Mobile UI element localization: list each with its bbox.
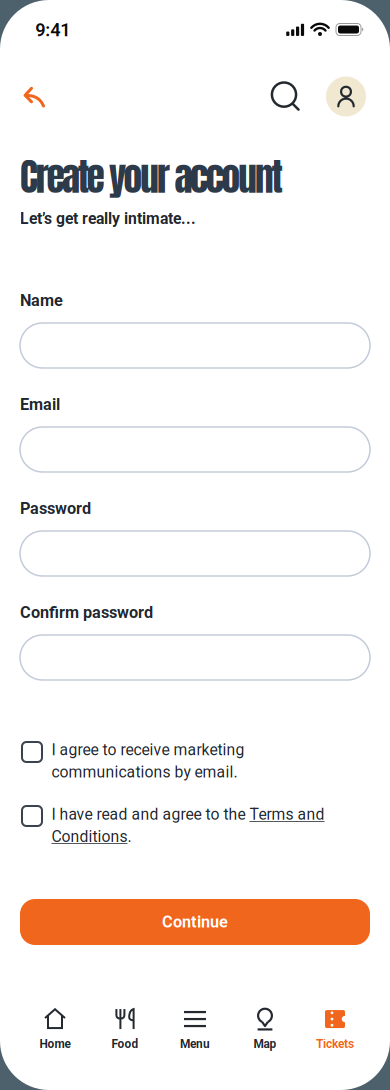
staticText: Menu <box>180 1037 210 1051</box>
staticText: I have read and agree to the Terms and C… <box>51 805 324 846</box>
staticText: Email <box>20 395 60 414</box>
staticText: Food <box>111 1037 138 1051</box>
button[interactable]: Menu <box>160 1001 230 1057</box>
staticText: Password <box>20 499 91 518</box>
button[interactable]: Tickets <box>300 1001 370 1057</box>
button[interactable]: Home <box>20 1001 90 1057</box>
staticText: Tickets <box>316 1037 354 1051</box>
staticText: Name <box>20 291 63 310</box>
button[interactable]: Continue <box>20 899 370 945</box>
button[interactable]: Map <box>230 1001 300 1057</box>
staticText: Create your account <box>20 149 283 205</box>
button[interactable]: Back <box>17 80 57 124</box>
button[interactable]: Profile <box>326 76 366 116</box>
button[interactable]: Food <box>90 1001 160 1057</box>
staticText: Continue <box>162 912 228 932</box>
staticText: Map <box>253 1037 276 1051</box>
button[interactable]: I have read and agree to the Terms and C… <box>51 805 381 846</box>
staticText: I agree to receive marketing communicati… <box>51 741 244 781</box>
staticText: 9:41 <box>35 19 70 41</box>
staticText: Home <box>39 1037 70 1051</box>
button[interactable]: I agree to receive marketing communicati… <box>18 738 46 766</box>
button[interactable]: Search <box>266 76 306 116</box>
staticText: Confirm password <box>20 603 153 622</box>
button[interactable]: I have read and agree to the Terms and C… <box>18 802 46 830</box>
staticText: Let’s get really intimate... <box>20 209 196 228</box>
